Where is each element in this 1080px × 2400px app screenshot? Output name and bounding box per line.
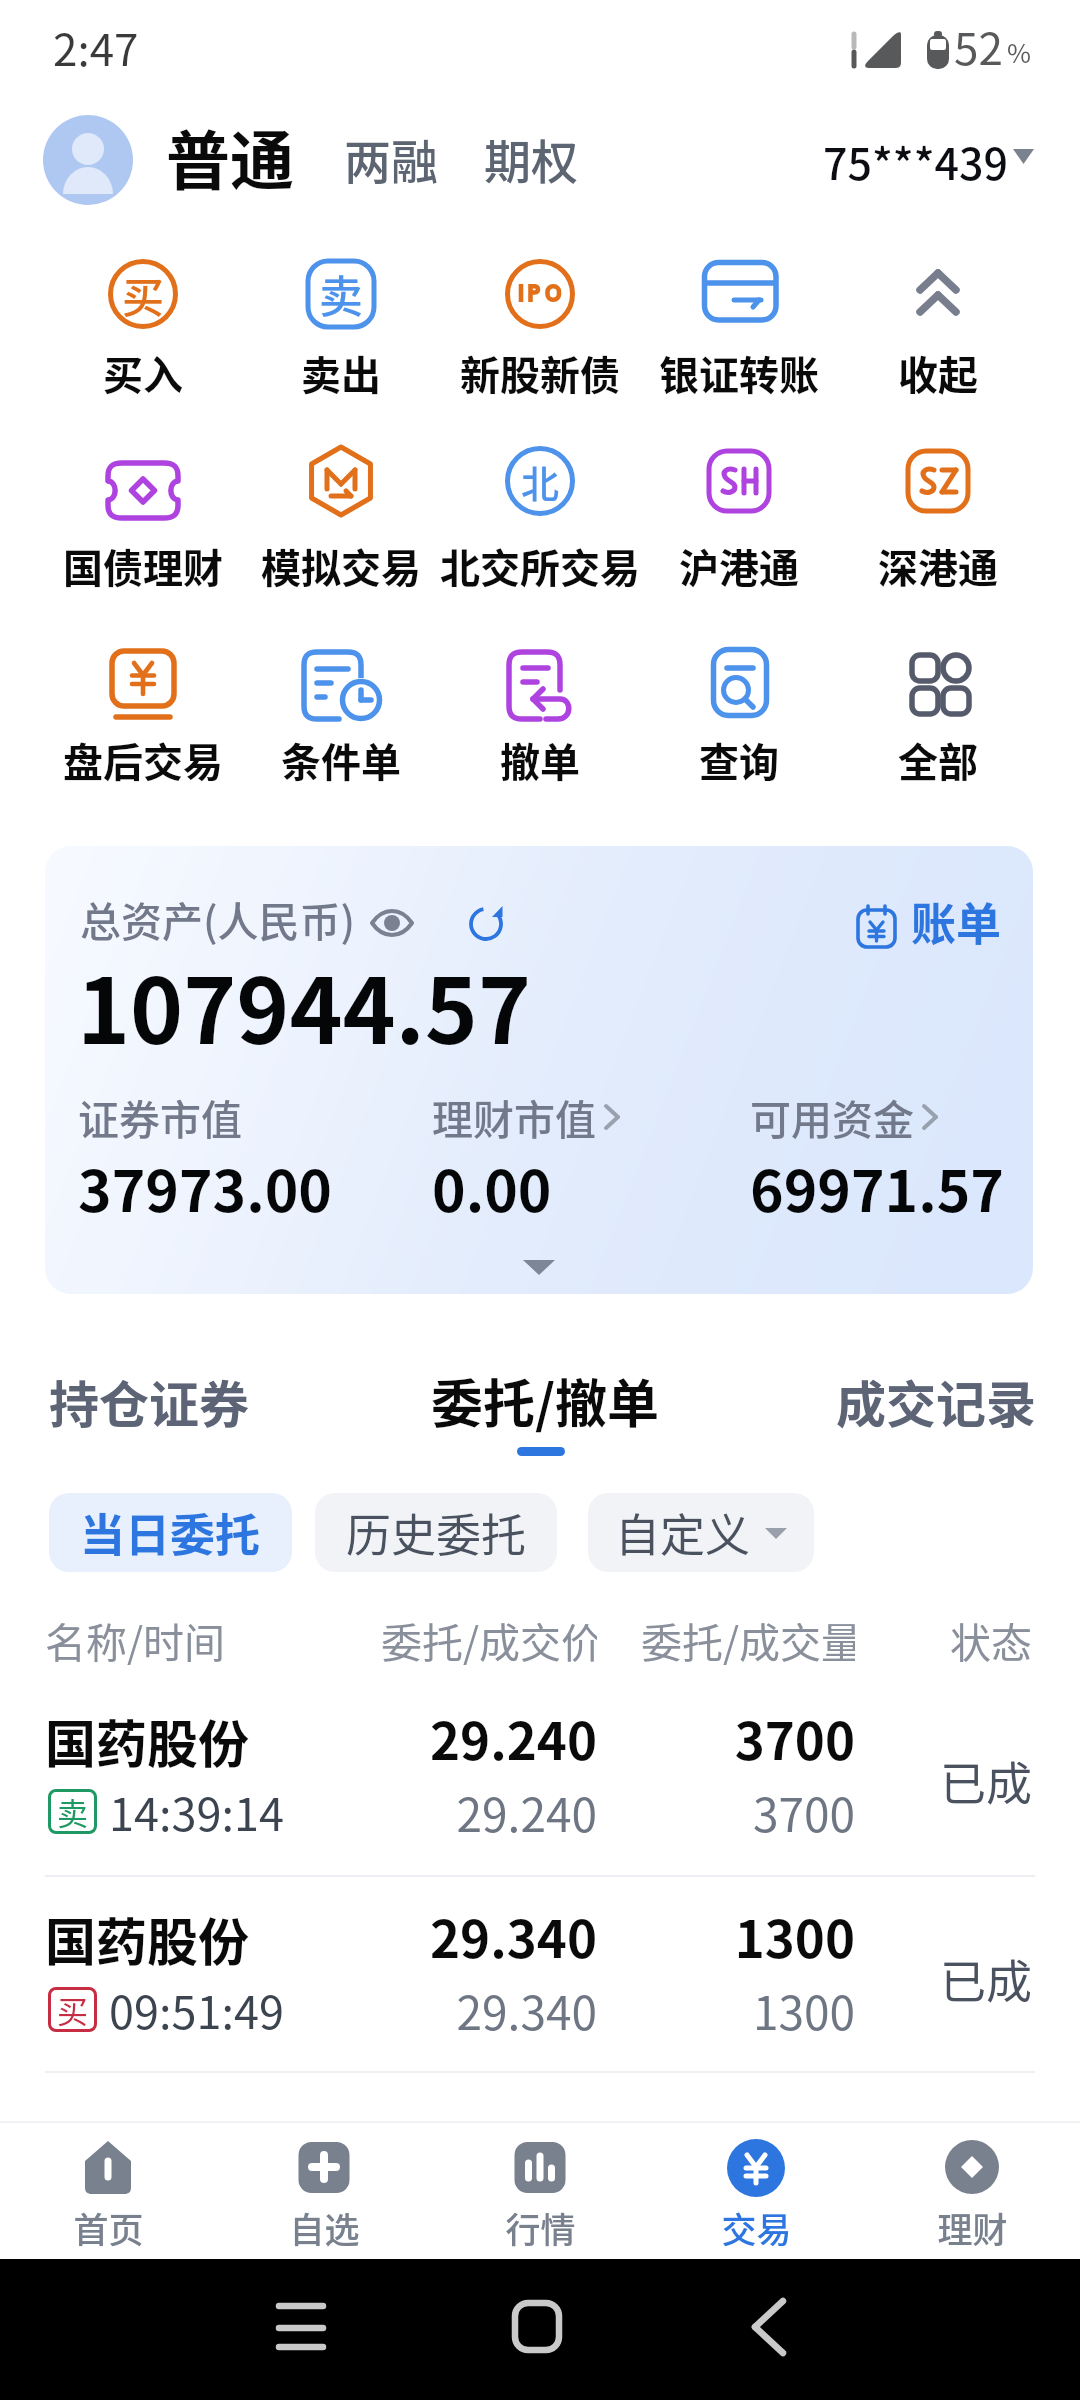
staticText: 3700 bbox=[640, 1779, 855, 1846]
button[interactable] bbox=[850, 891, 1033, 953]
staticText: 新股新债 bbox=[460, 344, 620, 402]
button[interactable] bbox=[648, 2126, 864, 2259]
staticText: 北 bbox=[521, 454, 560, 509]
button[interactable] bbox=[441, 435, 639, 575]
staticText: 29.340 bbox=[380, 1899, 597, 1973]
staticText: 0.00 bbox=[432, 1146, 552, 1229]
button[interactable]: Back bbox=[728, 2287, 810, 2369]
staticText: 账单 bbox=[911, 889, 1002, 954]
staticText: 1300 bbox=[640, 1899, 855, 1973]
staticText: 撤单 bbox=[500, 731, 580, 789]
button[interactable] bbox=[0, 1700, 1080, 1890]
button[interactable]: 总资产(人民币) bbox=[45, 846, 1033, 1294]
staticText: 29.240 bbox=[380, 1779, 597, 1846]
staticText: 国债理财 bbox=[63, 537, 223, 595]
staticText: 成交记录 bbox=[836, 1365, 1036, 1437]
button[interactable]: Refresh bbox=[469, 904, 515, 950]
staticText: 状态 bbox=[880, 1610, 1032, 1669]
button[interactable] bbox=[44, 248, 242, 388]
staticText: 历史委托 bbox=[346, 1500, 527, 1565]
button[interactable] bbox=[242, 636, 440, 776]
button[interactable]: 证券市值 bbox=[78, 1087, 242, 1146]
staticText: 交易 bbox=[721, 2202, 792, 2253]
staticText: 持仓证券 bbox=[49, 1365, 249, 1437]
button[interactable] bbox=[640, 636, 838, 776]
button[interactable] bbox=[242, 435, 440, 575]
staticText: 37973.00 bbox=[78, 1146, 332, 1229]
staticText: 29.340 bbox=[380, 1977, 597, 2044]
staticText: 全部 bbox=[898, 731, 978, 789]
button[interactable] bbox=[839, 435, 1037, 575]
button[interactable] bbox=[640, 248, 838, 388]
button[interactable]: 自定义 bbox=[588, 1493, 814, 1572]
staticText: 买 bbox=[122, 264, 165, 325]
staticText: 107944.57 bbox=[77, 940, 532, 1070]
staticText: 两融 bbox=[344, 124, 438, 192]
staticText: 当日委托 bbox=[80, 1500, 261, 1565]
staticText: 银证转账 bbox=[659, 344, 819, 402]
button[interactable]: Toggle balance visibility bbox=[371, 906, 417, 942]
button[interactable]: Account avatar bbox=[43, 115, 133, 205]
button[interactable] bbox=[432, 2126, 648, 2259]
staticText: 1300 bbox=[640, 1977, 855, 2044]
staticText: 52 bbox=[954, 14, 1003, 78]
staticText: 收起 bbox=[898, 344, 978, 402]
button[interactable] bbox=[839, 636, 1037, 776]
button[interactable]: 可用资金 bbox=[750, 1087, 946, 1146]
button[interactable]: 两融 bbox=[344, 124, 438, 192]
staticText: 委托/成交价 bbox=[380, 1610, 597, 1669]
staticText: 09:51:49 bbox=[109, 1977, 284, 2042]
button[interactable] bbox=[441, 248, 639, 388]
staticText: 总资产(人民币) bbox=[80, 889, 356, 948]
staticText: 69971.57 bbox=[750, 1146, 1004, 1229]
staticText: 卖出 bbox=[301, 344, 381, 402]
staticText: 可用资金 bbox=[750, 1087, 914, 1146]
button[interactable] bbox=[0, 2126, 216, 2259]
staticText: 模拟交易 bbox=[261, 537, 421, 595]
staticText: 名称/时间 bbox=[45, 1610, 226, 1669]
button[interactable]: Home bbox=[496, 2287, 578, 2369]
staticText: 首页 bbox=[73, 2202, 144, 2253]
staticText: 沪港通 bbox=[679, 537, 799, 595]
staticText: 买 bbox=[57, 1987, 88, 2032]
staticText: 理财市值 bbox=[432, 1087, 596, 1146]
staticText: 理财 bbox=[937, 2202, 1008, 2253]
button[interactable] bbox=[839, 248, 1037, 388]
staticText: % bbox=[1007, 33, 1031, 71]
button[interactable]: 普通 bbox=[166, 110, 294, 203]
button[interactable] bbox=[0, 1898, 1080, 2088]
staticText: 深港通 bbox=[878, 537, 998, 595]
button[interactable] bbox=[242, 248, 440, 388]
button[interactable]: 历史委托 bbox=[315, 1493, 557, 1572]
button[interactable]: 委托/撤单 bbox=[412, 1351, 672, 1433]
staticText: 查询 bbox=[699, 731, 779, 789]
staticText: 委托/撤单 bbox=[431, 1363, 660, 1438]
staticText: 2:47 bbox=[53, 15, 139, 79]
staticText: 已成 bbox=[880, 1747, 1032, 1814]
button[interactable] bbox=[44, 435, 242, 575]
staticText: 29.240 bbox=[380, 1701, 597, 1775]
staticText: 75***439 bbox=[823, 130, 1008, 192]
staticText: 盘后交易 bbox=[63, 731, 223, 789]
staticText: 3700 bbox=[640, 1701, 855, 1775]
staticText: 行情 bbox=[505, 2202, 576, 2253]
staticText: 卖 bbox=[319, 262, 363, 326]
staticText: 委托/成交量 bbox=[640, 1610, 855, 1669]
button[interactable]: 当日委托 bbox=[49, 1493, 292, 1572]
staticText: 买入 bbox=[103, 344, 183, 402]
button[interactable] bbox=[216, 2126, 432, 2259]
staticText: 条件单 bbox=[281, 731, 401, 789]
button[interactable] bbox=[441, 636, 639, 776]
staticText: 已成 bbox=[880, 1945, 1032, 2012]
button[interactable]: Recents bbox=[260, 2287, 342, 2369]
button[interactable] bbox=[640, 435, 838, 575]
button[interactable]: 成交记录 bbox=[820, 1351, 1060, 1433]
button[interactable]: 理财市值 bbox=[432, 1087, 628, 1146]
staticText: 北交所交易 bbox=[440, 537, 640, 595]
staticText: 自定义 bbox=[615, 1500, 751, 1565]
button[interactable] bbox=[864, 2126, 1080, 2259]
button[interactable] bbox=[44, 636, 242, 776]
button[interactable] bbox=[810, 118, 1042, 192]
button[interactable]: 持仓证券 bbox=[24, 1351, 274, 1433]
button[interactable]: 期权 bbox=[484, 124, 578, 192]
